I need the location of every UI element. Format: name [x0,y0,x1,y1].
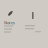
staticText: Notes [4,20,15,25]
